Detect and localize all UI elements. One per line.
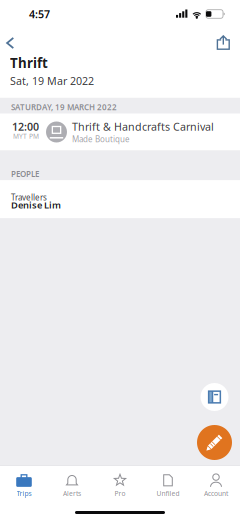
- button[interactable]: Compose: [197, 425, 232, 460]
- staticText: Alerts: [63, 489, 81, 498]
- staticText: Made Boutique: [72, 134, 130, 144]
- staticText: 4:57: [29, 7, 50, 21]
- button[interactable]: Alerts: [48, 466, 96, 502]
- staticText: Unfiled: [156, 489, 179, 498]
- button[interactable]: 12:00: [0, 113, 240, 150]
- button[interactable]: Account: [192, 466, 240, 502]
- button[interactable]: Trips: [0, 466, 48, 502]
- staticText: Thrift: [10, 54, 48, 72]
- staticText: MYT PM: [13, 132, 39, 141]
- staticText: Trips: [16, 489, 31, 498]
- staticText: PEOPLE: [11, 168, 39, 179]
- staticText: Travellers: [11, 192, 47, 203]
- staticText: Denise Lim: [11, 199, 61, 211]
- staticText: Sat, 19 Mar 2022: [10, 74, 94, 88]
- button[interactable]: Unfiled: [144, 466, 192, 502]
- button[interactable]: Notes: [200, 383, 228, 411]
- staticText: Pro: [114, 489, 125, 498]
- button[interactable]: Travellers: [0, 180, 240, 218]
- button[interactable]: Pro: [96, 466, 144, 502]
- button[interactable]: Back: [0, 28, 24, 51]
- button[interactable]: Share: [207, 28, 240, 51]
- staticText: Thrift & Handcrafts Carnival: [72, 120, 214, 134]
- staticText: 12:00: [12, 119, 39, 134]
- staticText: SATURDAY, 19 MARCH 2022: [11, 102, 117, 112]
- staticText: Account: [204, 489, 228, 498]
